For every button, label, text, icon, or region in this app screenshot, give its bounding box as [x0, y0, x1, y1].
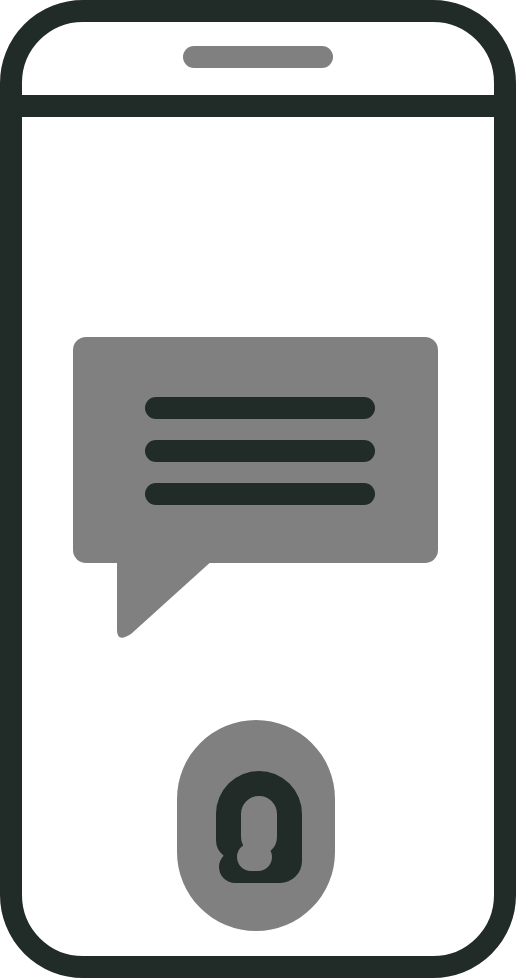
- button[interactable]: Secure chat message, fingerprint unlock: [0, 0, 516, 980]
